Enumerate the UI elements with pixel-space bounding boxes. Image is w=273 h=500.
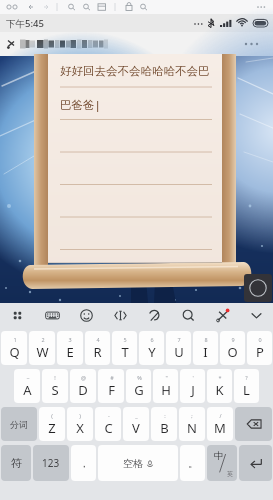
button[interactable]: : xyxy=(151,407,177,441)
staticText: D xyxy=(78,381,88,399)
button[interactable]: 空格 xyxy=(98,445,178,481)
staticText: L xyxy=(243,381,250,399)
staticText: 0 xyxy=(258,336,262,343)
staticText: ' xyxy=(192,374,194,381)
button[interactable]: _ xyxy=(123,407,149,441)
staticText: Z xyxy=(48,419,56,437)
staticText: N xyxy=(187,419,197,437)
staticText: C xyxy=(104,419,113,437)
staticText: R xyxy=(93,343,102,361)
staticText: : xyxy=(164,412,166,419)
button[interactable]: clip xyxy=(137,303,171,327)
staticText: % xyxy=(137,374,142,381)
staticText: G xyxy=(134,381,144,399)
button[interactable]: 符 xyxy=(1,445,31,481)
staticText: M xyxy=(214,419,226,437)
staticText: 符 xyxy=(11,456,22,470)
button[interactable]: 6 xyxy=(139,331,164,365)
staticText: S xyxy=(51,381,59,399)
button[interactable]: More options xyxy=(233,32,273,56)
staticText: T xyxy=(121,343,129,361)
staticText: " xyxy=(165,374,168,381)
staticText: F xyxy=(108,381,115,399)
button[interactable]: ; xyxy=(179,407,205,441)
button[interactable]: 分词 xyxy=(1,407,37,441)
button[interactable]: 2 xyxy=(29,331,55,365)
staticText: V xyxy=(132,419,140,437)
staticText: ? xyxy=(245,374,248,381)
staticText: A xyxy=(23,381,32,399)
staticText: U xyxy=(174,343,184,361)
staticText: * xyxy=(218,374,222,381)
button[interactable]: % xyxy=(126,369,151,403)
staticText: 下午5:45 xyxy=(6,17,44,30)
staticText: ) xyxy=(79,412,81,419)
staticText: 123 xyxy=(42,456,60,470)
staticText: 3 xyxy=(68,336,72,343)
button[interactable]: 123 xyxy=(33,445,69,481)
staticText: 1 xyxy=(13,336,17,343)
button[interactable]: " xyxy=(153,369,178,403)
staticText: ~ xyxy=(26,374,30,381)
button[interactable]: ! xyxy=(42,369,68,403)
staticText: ; xyxy=(191,412,193,419)
staticText: / xyxy=(219,412,222,419)
staticText: ( xyxy=(51,412,53,419)
staticText: I xyxy=(203,343,208,361)
button[interactable]: 。 xyxy=(180,445,205,481)
button[interactable]: search xyxy=(171,303,205,327)
button[interactable]: down xyxy=(239,303,273,327)
button[interactable]: / xyxy=(207,407,233,441)
staticText: 分词 xyxy=(10,419,28,430)
button[interactable]: cursor xyxy=(103,303,137,327)
button[interactable]: ? xyxy=(234,369,259,403)
button[interactable]: ) xyxy=(67,407,93,441)
button[interactable]: # xyxy=(98,369,124,403)
button[interactable]: Backspace xyxy=(235,407,272,441)
staticText: - xyxy=(108,412,110,419)
button[interactable]: ( xyxy=(39,407,65,441)
button[interactable]: ， xyxy=(71,445,96,481)
staticText: E xyxy=(66,343,74,361)
staticText: P xyxy=(256,343,264,361)
button[interactable]: emoji xyxy=(69,303,103,327)
staticText: @ xyxy=(81,374,86,381)
button[interactable]: 中 xyxy=(207,445,237,481)
button[interactable]: cut xyxy=(205,303,239,327)
staticText: 4 xyxy=(96,336,100,343)
staticText: H xyxy=(161,381,171,399)
staticText: X xyxy=(76,419,84,437)
staticText: 好好回去会不会哈哈哈不会巴 xyxy=(60,64,210,78)
button[interactable]: 3 xyxy=(57,331,83,365)
staticText: 6 xyxy=(150,336,154,343)
button[interactable]: apps xyxy=(0,303,35,327)
staticText: _ xyxy=(135,412,138,419)
staticText: W xyxy=(36,343,49,361)
button[interactable]: 9 xyxy=(220,331,245,365)
button[interactable]: * xyxy=(207,369,232,403)
button[interactable]: 5 xyxy=(112,331,137,365)
staticText: O xyxy=(227,343,238,361)
button[interactable]: kb xyxy=(35,303,69,327)
staticText: 中 xyxy=(214,450,224,462)
staticText: 巴爸爸| xyxy=(60,97,101,113)
staticText: J xyxy=(191,381,195,399)
button[interactable]: - xyxy=(95,407,121,441)
button[interactable]: ' xyxy=(180,369,205,403)
button[interactable]: ~ xyxy=(14,369,40,403)
button[interactable]: Enter xyxy=(239,445,272,481)
staticText: K xyxy=(215,381,224,399)
staticText: 2 xyxy=(41,336,45,343)
button[interactable]: 1 xyxy=(1,331,27,365)
button[interactable]: 8 xyxy=(193,331,218,365)
button[interactable]: 0 xyxy=(247,331,272,365)
staticText: # xyxy=(110,374,114,381)
button[interactable]: @ xyxy=(70,369,96,403)
staticText: ! xyxy=(54,374,56,381)
staticText: ， xyxy=(79,457,89,470)
staticText: 8 xyxy=(204,336,208,343)
button[interactable]: 4 xyxy=(85,331,110,365)
staticText: 。 xyxy=(188,457,198,470)
staticText: 9 xyxy=(231,336,235,343)
button[interactable]: 7 xyxy=(166,331,191,365)
